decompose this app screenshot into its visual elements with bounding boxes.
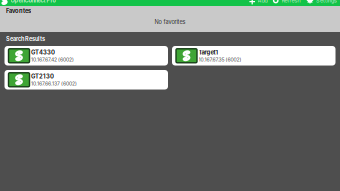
staticText: Search Results	[6, 36, 45, 42]
button[interactable]: Add	[247, 0, 270, 4]
button[interactable]: GT4330	[4, 46, 168, 65]
staticText: Target1	[198, 49, 218, 56]
staticText: Favorites	[6, 7, 31, 14]
staticText: 10.167.67.42 (6002)	[31, 56, 74, 63]
staticText: GT4330	[31, 49, 55, 56]
staticText: Add	[257, 0, 267, 4]
staticText: Settings	[316, 0, 337, 4]
button[interactable]: Target1	[172, 46, 335, 65]
staticText: 10.167.66.137 (6002)	[31, 80, 77, 87]
staticText: 10.167.67.35 (6002)	[198, 56, 241, 63]
button[interactable]: OpenConnect home	[0, 0, 55, 5]
button[interactable]: Refresh	[270, 0, 303, 4]
staticText: No favorites	[154, 19, 185, 25]
button[interactable]: GT2130	[4, 70, 168, 89]
staticText: OpenConnect Pro	[10, 0, 55, 4]
staticText: Refresh	[281, 0, 300, 4]
staticText: GT2130	[31, 73, 54, 80]
button[interactable]: Settings	[303, 0, 340, 4]
